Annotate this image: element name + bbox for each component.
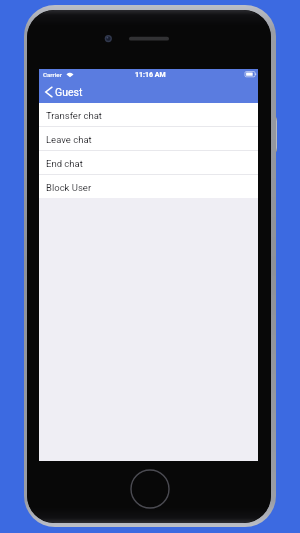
staticText: Guest <box>55 86 83 98</box>
staticText: Block User <box>46 182 92 193</box>
staticText: End chat <box>46 158 83 169</box>
button[interactable]: Block User <box>39 175 258 198</box>
staticText: 11:16 AM <box>135 71 166 79</box>
staticText: Transfer chat <box>46 110 102 121</box>
button[interactable]: Transfer chat <box>39 103 258 126</box>
staticText: Carrier <box>43 71 62 78</box>
staticText: Leave chat <box>46 134 92 145</box>
button[interactable]: Back <box>39 80 258 103</box>
button[interactable]: Leave chat <box>39 127 258 150</box>
other: Back <box>45 86 53 98</box>
button[interactable]: End chat <box>39 151 258 174</box>
